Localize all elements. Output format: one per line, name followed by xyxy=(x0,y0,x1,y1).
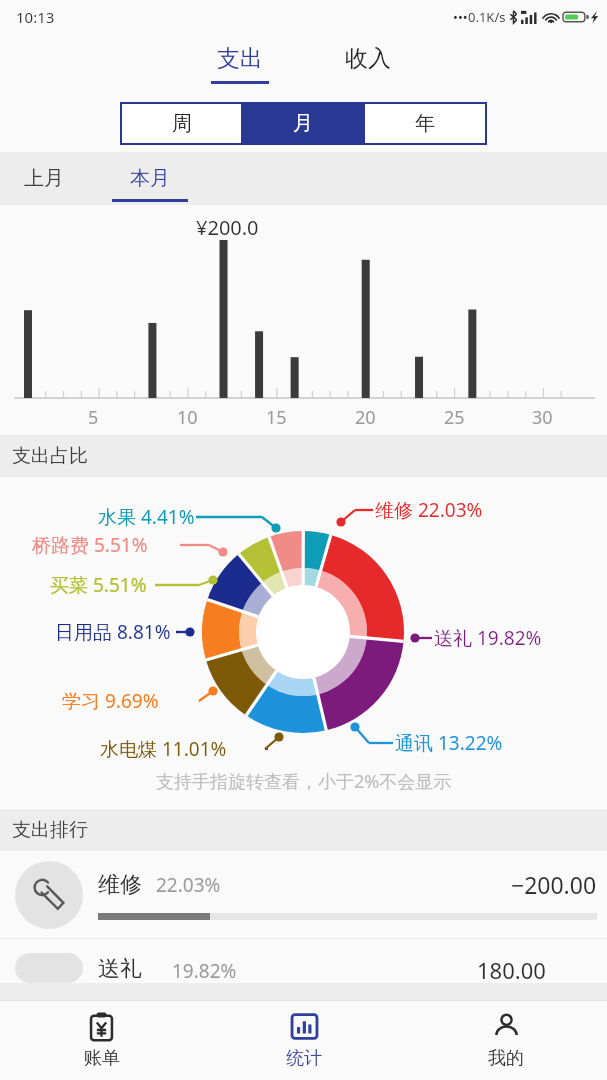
staticText: 10 xyxy=(177,405,198,430)
button[interactable]: 周 xyxy=(122,104,241,143)
staticText: 支出排行 xyxy=(12,818,88,842)
button[interactable]: 统计 xyxy=(203,1001,405,1080)
staticText: 买菜 5.51% xyxy=(50,572,147,598)
staticText: 通讯 13.22% xyxy=(395,730,503,756)
staticText: 送礼 xyxy=(98,955,142,983)
staticText: ¥200.0 xyxy=(196,214,259,241)
staticText: 维修 22.03% xyxy=(375,497,483,523)
staticText: 送礼 19.82% xyxy=(434,625,542,651)
staticText: 25 xyxy=(444,405,465,430)
staticText: 月 xyxy=(293,111,313,136)
button[interactable]: 本月 xyxy=(88,152,212,205)
staticText: 上月 xyxy=(24,166,64,191)
staticText: 22.03% xyxy=(156,872,221,898)
staticText: 180.00 xyxy=(477,955,546,985)
staticText: 水果 4.41% xyxy=(98,504,195,530)
staticText: 支出 xyxy=(217,44,263,73)
staticText: 10:13 xyxy=(16,7,55,27)
staticText: 本月 xyxy=(130,166,170,191)
staticText: −200.00 xyxy=(511,869,597,900)
staticText: 20 xyxy=(355,405,376,430)
staticText: 支出占比 xyxy=(12,444,88,468)
staticText: 维修 xyxy=(98,871,142,899)
staticText: 0.1K/s xyxy=(468,8,506,26)
staticText: 水电煤 11.01% xyxy=(100,736,227,762)
button[interactable]: 上月 xyxy=(0,152,88,205)
staticText: 我的 xyxy=(488,1047,524,1070)
button[interactable]: 维修 xyxy=(0,851,607,938)
staticText: 支持手指旋转查看，小于2%不会显示 xyxy=(156,769,452,794)
staticText: 学习 9.69% xyxy=(62,688,159,714)
staticText: 周 xyxy=(172,111,192,136)
staticText: 15 xyxy=(266,405,287,430)
staticText: 账单 xyxy=(84,1047,120,1070)
button[interactable]: 月 xyxy=(243,104,363,143)
staticText: 桥路费 5.51% xyxy=(32,532,148,558)
staticText: 19.82% xyxy=(172,958,237,984)
staticText: 30 xyxy=(532,405,553,430)
button[interactable]: 我的 xyxy=(405,1001,607,1080)
button[interactable]: 账单 xyxy=(0,1001,203,1080)
button[interactable]: 送礼 xyxy=(0,939,607,983)
button[interactable]: 支出 xyxy=(195,40,285,88)
staticText: 收入 xyxy=(345,44,391,73)
staticText: ••• xyxy=(453,8,468,26)
button[interactable]: 收入 xyxy=(323,40,413,88)
staticText: 日用品 8.81% xyxy=(55,619,171,645)
button[interactable]: 年 xyxy=(365,104,485,143)
staticText: 5 xyxy=(88,405,99,430)
staticText: 年 xyxy=(415,111,435,136)
staticText: 统计 xyxy=(286,1047,322,1070)
